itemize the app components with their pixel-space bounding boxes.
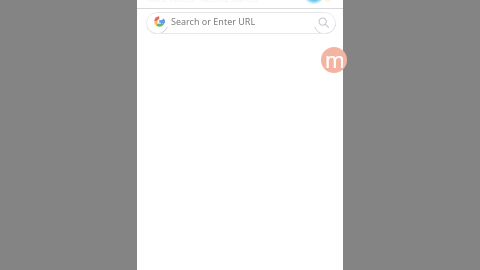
button[interactable]: Site icon (321, 47, 347, 73)
staticText: Search or Enter URL (171, 15, 256, 27)
button[interactable]: Tabs (148, 0, 268, 3)
staticText: Most Visited Getting Started (148, 0, 258, 3)
button[interactable]: Search or Enter URL (146, 12, 336, 34)
button[interactable]: Account (304, 0, 324, 4)
staticText: m (325, 47, 345, 72)
